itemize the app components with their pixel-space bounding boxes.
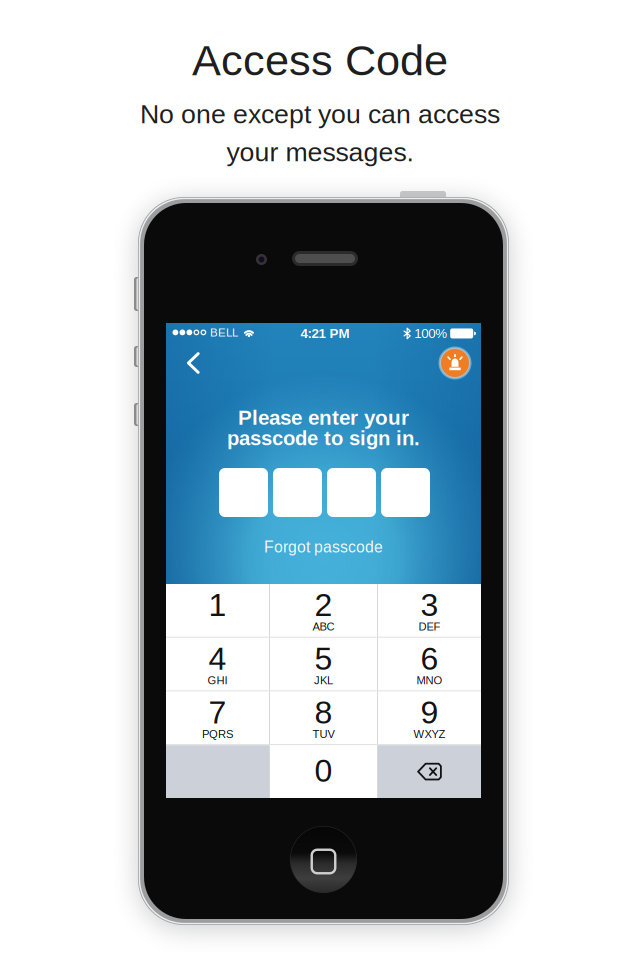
staticText: PQRS [202, 728, 233, 740]
button[interactable]: 5 [270, 638, 377, 691]
button[interactable]: 7 [166, 691, 269, 744]
staticText: No one except you can access [140, 99, 500, 129]
staticText: your messages. [226, 137, 413, 167]
staticText: 100% [414, 326, 447, 341]
staticText: 3 [420, 587, 438, 623]
staticText: DEF [418, 620, 440, 633]
staticText: MNO [416, 674, 442, 686]
staticText: BELL [210, 326, 238, 339]
staticText: 1 [208, 587, 226, 623]
staticText: 9 [420, 694, 438, 730]
staticText: WXYZ [413, 728, 445, 740]
staticText: 4:21 PM [300, 326, 349, 341]
button[interactable]: 4 [166, 638, 269, 691]
staticText: 7 [208, 694, 226, 730]
button[interactable]: Back [173, 343, 213, 383]
staticText: 0 [314, 753, 332, 789]
staticText: Forgot passcode [264, 538, 383, 556]
button[interactable]: 9 [378, 691, 481, 744]
button[interactable]: Alerts [435, 343, 475, 383]
button[interactable]: 8 [270, 691, 377, 744]
staticText: passcode to sign in. [227, 427, 420, 450]
button[interactable]: 3 [378, 584, 481, 637]
staticText: JKL [314, 674, 333, 686]
staticText: 2 [314, 587, 332, 623]
button[interactable]: 2 [270, 584, 377, 637]
button[interactable]: 6 [378, 638, 481, 691]
staticText: 5 [314, 641, 332, 677]
staticText: Access Code [192, 36, 448, 84]
button[interactable]: 1 [166, 584, 269, 637]
staticText: TUV [312, 728, 334, 740]
staticText: Please enter your [238, 406, 409, 429]
button[interactable]: Forgot passcode [166, 534, 481, 560]
staticText: 6 [420, 641, 438, 677]
button[interactable]: 0 [270, 745, 377, 798]
staticText: 8 [314, 694, 332, 730]
staticText: 4 [208, 641, 226, 677]
staticText: ABC [312, 620, 334, 633]
staticText: GHI [207, 674, 227, 686]
button[interactable]: Delete [378, 745, 481, 798]
